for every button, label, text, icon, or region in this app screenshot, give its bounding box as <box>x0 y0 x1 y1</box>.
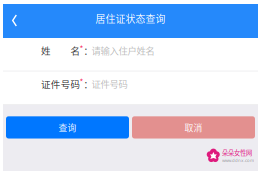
staticText: 号 <box>61 77 70 91</box>
button[interactable]: Back <box>3 4 26 37</box>
staticText: 名 <box>70 43 79 57</box>
staticText: ： <box>83 43 92 57</box>
staticText: 件 <box>51 77 60 91</box>
staticText: www.ddnx.com <box>222 158 254 163</box>
staticText: ： <box>83 77 92 91</box>
staticText: 证件号码 <box>91 77 127 90</box>
staticText: 请输入住户姓名 <box>91 44 154 57</box>
staticText: * <box>79 42 83 54</box>
staticText: 姓 <box>41 43 50 57</box>
staticText: 码 <box>70 77 79 91</box>
staticText: 取消 <box>184 121 202 134</box>
staticText: 居住证状态查询 <box>95 11 165 26</box>
staticText: 朵朵女性网 <box>222 148 252 157</box>
staticText: * <box>79 76 83 88</box>
button[interactable]: 查询 <box>6 116 129 138</box>
staticText: 证 <box>41 77 50 91</box>
button[interactable]: 取消 <box>132 116 255 138</box>
staticText: 查询 <box>58 121 76 134</box>
